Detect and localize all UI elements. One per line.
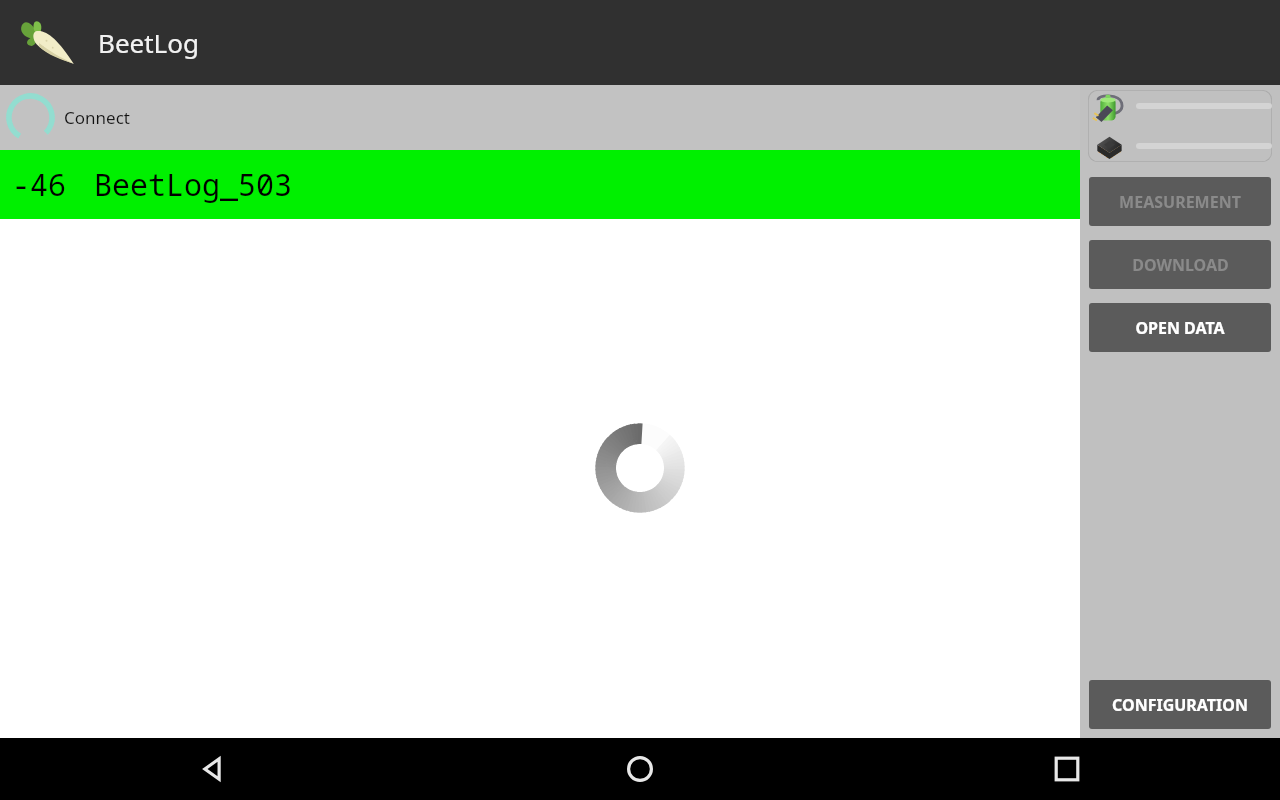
staticText: BeetLog [98, 25, 199, 60]
button[interactable]: -46 [0, 150, 1080, 219]
staticText: OPEN DATA [1135, 317, 1225, 339]
staticText: MEASUREMENT [1119, 191, 1241, 213]
button[interactable]: Connect [0, 85, 1080, 150]
button[interactable]: MEASUREMENT [1089, 177, 1271, 226]
staticText: Connect [64, 106, 130, 129]
button[interactable]: CONFIGURATION [1089, 680, 1271, 729]
staticText: -46 [12, 164, 66, 205]
staticText: DOWNLOAD [1132, 254, 1229, 276]
button[interactable]: DOWNLOAD [1089, 240, 1271, 289]
staticText: CONFIGURATION [1112, 694, 1248, 716]
button[interactable]: Home [426, 738, 853, 800]
staticText: BeetLog_503 [94, 164, 292, 205]
button[interactable]: OPEN DATA [1089, 303, 1271, 352]
button[interactable]: Recent apps [853, 738, 1280, 800]
button[interactable]: Back [0, 738, 426, 800]
